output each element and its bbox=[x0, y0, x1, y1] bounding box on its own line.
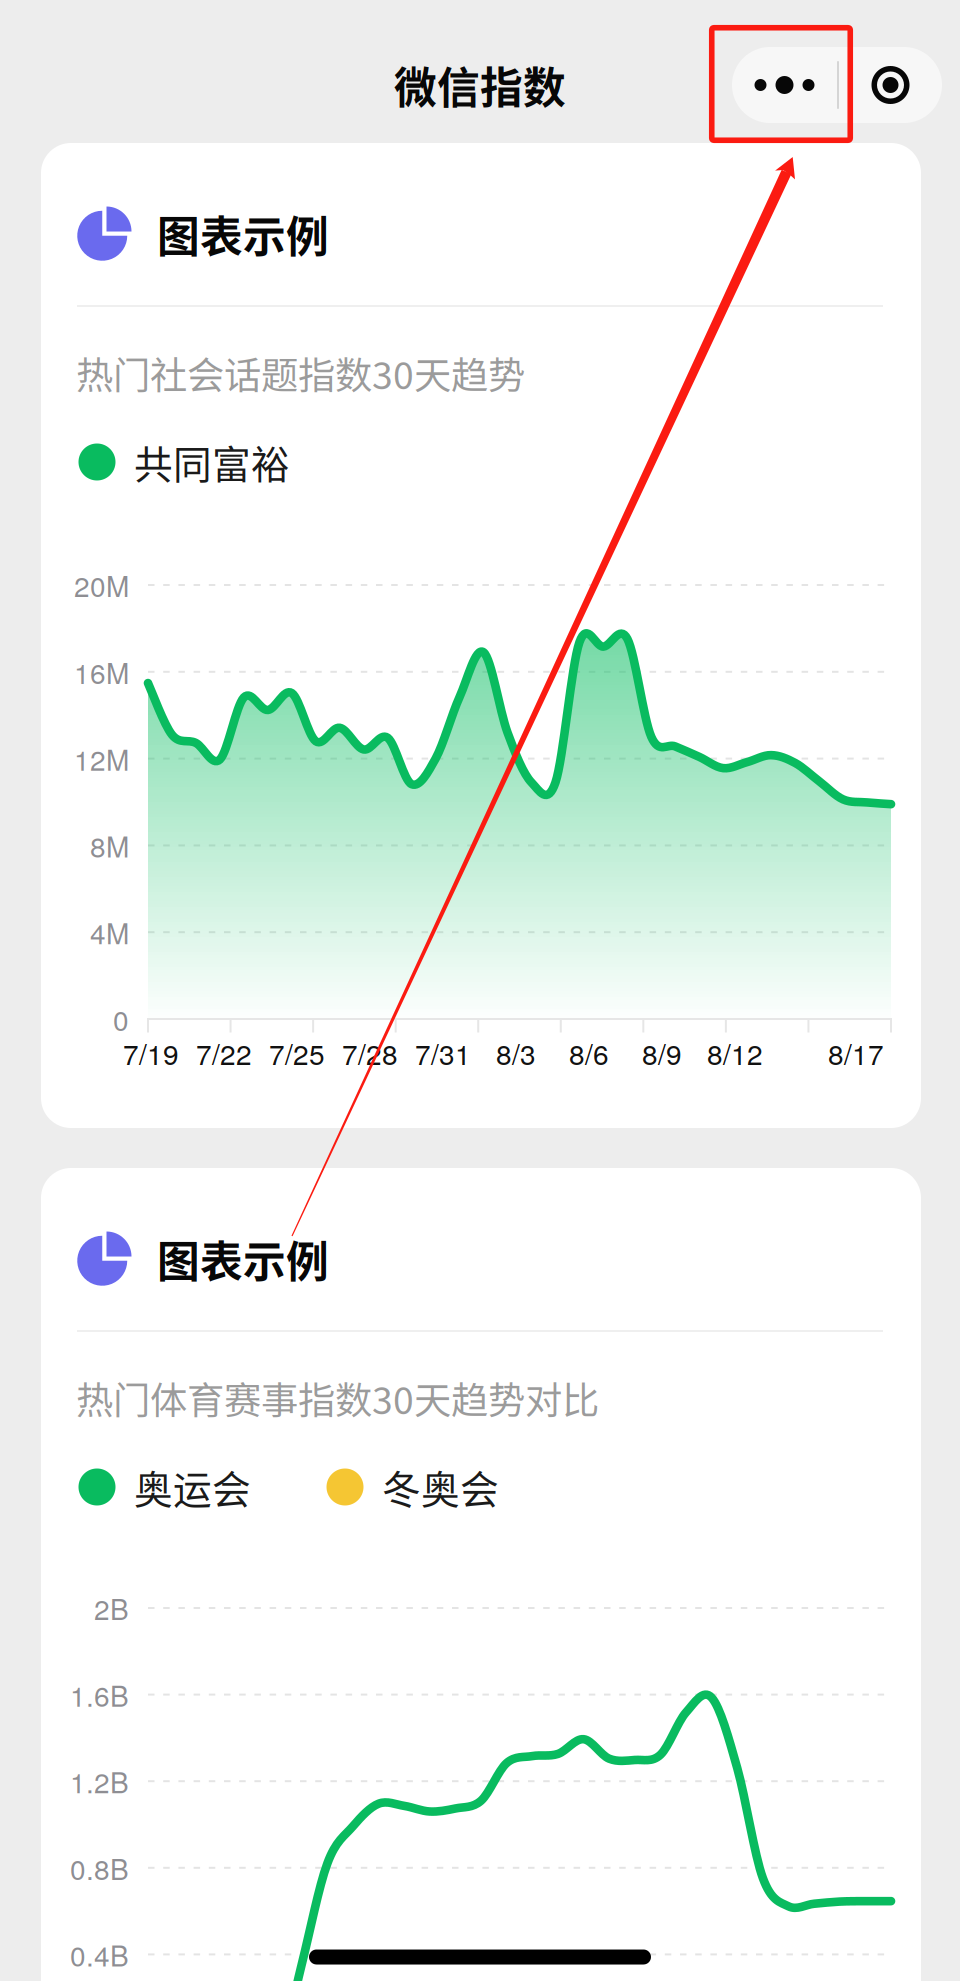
staticText: 0 bbox=[113, 999, 129, 1039]
staticText: 8/12 bbox=[707, 1033, 763, 1073]
staticText: 1.2B bbox=[70, 1761, 129, 1801]
staticText: 4M bbox=[90, 912, 129, 952]
staticText: 7/22 bbox=[196, 1033, 252, 1073]
button[interactable]: More options bbox=[732, 47, 837, 123]
staticText: 20M bbox=[74, 565, 129, 605]
staticText: 8/9 bbox=[642, 1033, 682, 1073]
staticText: 0.4B bbox=[70, 1934, 129, 1974]
staticText: 热门体育赛事指数30天趋势对比 bbox=[76, 1371, 599, 1425]
staticText: 共同富裕 bbox=[134, 434, 290, 490]
staticText: 7/28 bbox=[342, 1033, 398, 1073]
staticText: 图表示例 bbox=[157, 203, 329, 265]
staticText: 8/6 bbox=[569, 1033, 609, 1073]
staticText: 12M bbox=[74, 739, 129, 779]
staticText: 0.8B bbox=[70, 1848, 129, 1888]
staticText: 7/31 bbox=[415, 1033, 471, 1073]
staticText: 图表示例 bbox=[157, 1228, 329, 1290]
staticText: 16M bbox=[74, 652, 129, 692]
staticText: 8M bbox=[90, 825, 129, 865]
staticText: 微信指数 bbox=[394, 54, 566, 116]
button[interactable]: Close mini program bbox=[839, 47, 942, 123]
staticText: 热门社会话题指数30天趋势 bbox=[76, 346, 525, 400]
staticText: 7/25 bbox=[269, 1033, 325, 1073]
staticText: 2B bbox=[94, 1588, 129, 1628]
staticText: 冬奥会 bbox=[382, 1459, 499, 1515]
staticText: 8/17 bbox=[828, 1033, 884, 1073]
staticText: 8/3 bbox=[496, 1033, 536, 1073]
staticText: 奥运会 bbox=[134, 1459, 251, 1515]
staticText: 7/19 bbox=[123, 1033, 179, 1073]
staticText: 1.6B bbox=[70, 1675, 129, 1715]
